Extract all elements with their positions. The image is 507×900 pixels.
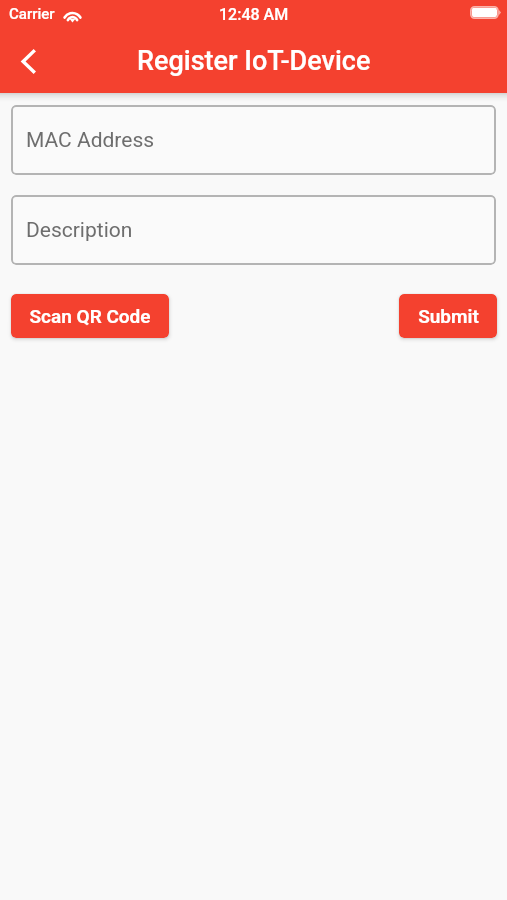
staticText: Register IoT-Device bbox=[137, 45, 371, 77]
button[interactable]: Scan QR Code bbox=[11, 294, 169, 338]
button[interactable]: Description bbox=[11, 195, 496, 265]
button[interactable]: Back bbox=[0, 33, 56, 89]
button[interactable]: Submit bbox=[399, 294, 497, 338]
staticText: Description bbox=[26, 218, 133, 243]
staticText: MAC Address bbox=[26, 128, 155, 153]
staticText: Carrier bbox=[9, 5, 55, 23]
staticText: Submit bbox=[418, 305, 479, 327]
staticText: Scan QR Code bbox=[29, 305, 151, 327]
staticText: 12:48 AM bbox=[219, 5, 289, 24]
button[interactable]: MAC Address bbox=[11, 105, 496, 175]
